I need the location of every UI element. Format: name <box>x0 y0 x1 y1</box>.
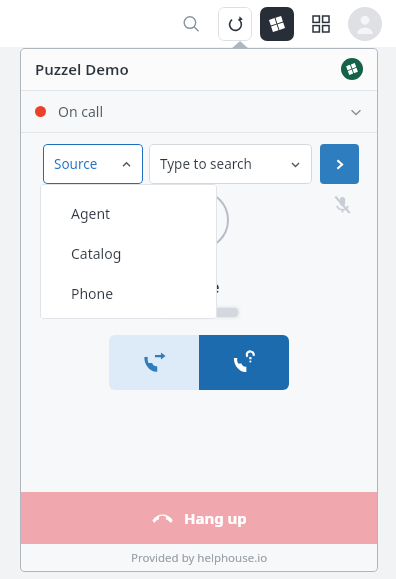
button[interactable]: Search <box>174 7 208 41</box>
staticText: On call <box>58 102 104 121</box>
button[interactable]: Transfer call <box>109 335 199 390</box>
button[interactable]: Go <box>320 144 359 184</box>
button[interactable]: Source <box>43 144 143 184</box>
button[interactable]: Puzzel logo <box>341 58 363 80</box>
staticText: Type to search <box>160 155 252 173</box>
button[interactable]: Puzzel app <box>260 7 294 41</box>
button[interactable]: Microphone muted <box>329 191 355 217</box>
staticText: Trine <box>179 276 220 298</box>
staticText: Agent <box>71 204 111 223</box>
button[interactable]: On call <box>20 91 378 132</box>
staticText: Hang up <box>184 508 247 528</box>
button[interactable]: Type to search <box>149 144 312 184</box>
staticText: Source <box>54 155 98 173</box>
staticText: Catalog <box>71 244 122 263</box>
button[interactable]: Apps <box>304 7 338 41</box>
staticText: Puzzel Demo <box>35 59 129 79</box>
staticText: Phone <box>71 284 114 303</box>
button[interactable]: Profile <box>348 7 382 41</box>
button[interactable]: Hang up <box>20 492 378 544</box>
staticText: Provided by helphouse.io <box>131 550 268 566</box>
button[interactable]: Catalog <box>40 233 217 273</box>
button[interactable]: Refresh <box>218 7 252 41</box>
button[interactable]: Consult call <box>199 335 289 390</box>
button[interactable]: Agent <box>40 193 217 233</box>
button[interactable]: Phone <box>40 273 217 313</box>
